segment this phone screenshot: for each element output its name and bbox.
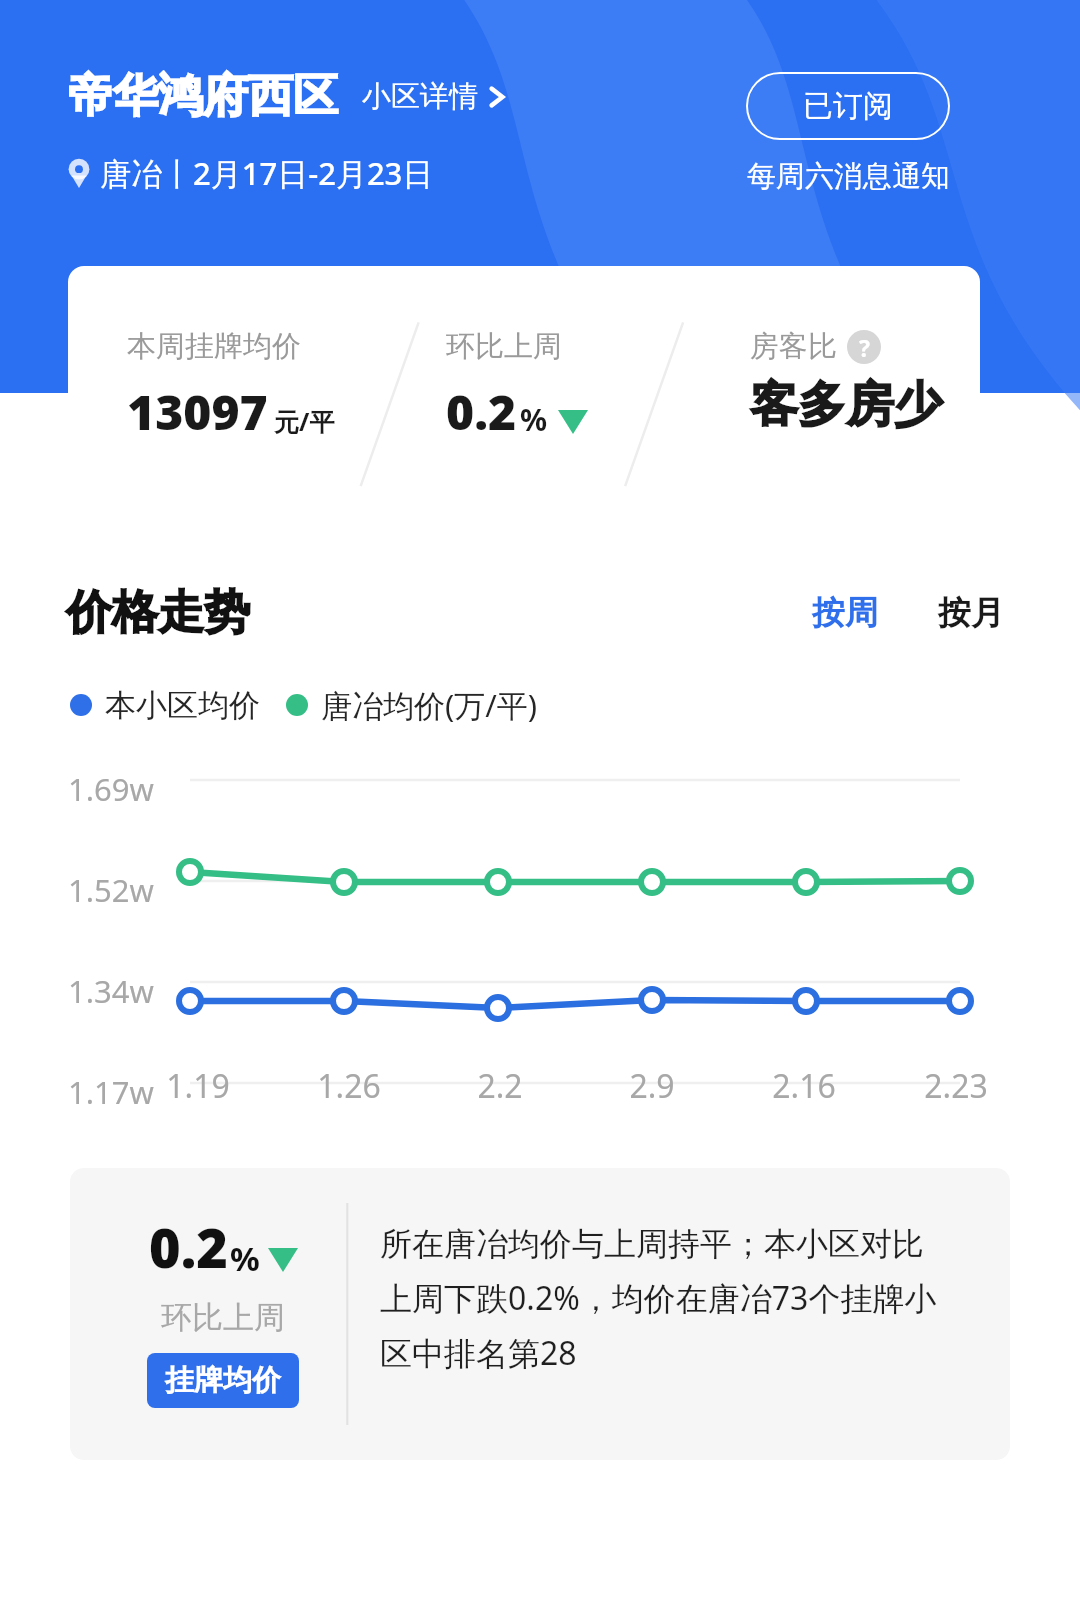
staticText: 已订阅 <box>803 87 893 125</box>
staticText: 唐冶丨2月17日-2月23日 <box>100 152 434 194</box>
staticText: 小区详情 <box>362 78 478 115</box>
staticText: 本周挂牌均价 <box>127 328 301 365</box>
staticText: % <box>520 399 548 440</box>
button[interactable]: 按月 <box>928 584 1014 642</box>
staticText: 价格走势 <box>66 584 250 642</box>
staticText: 2.2 <box>477 1064 523 1108</box>
staticText: 客多房少 <box>750 375 942 435</box>
staticText: 环比上周 <box>161 1298 285 1337</box>
staticText: 1.34w <box>68 970 154 1012</box>
staticText: ? <box>859 332 870 363</box>
button[interactable]: 已订阅 <box>746 72 950 140</box>
staticText: 2.23 <box>924 1064 988 1108</box>
staticText: 房客比 <box>750 328 837 365</box>
button[interactable]: 房客比说明 <box>847 330 881 364</box>
staticText: 帝华鸿府西区 <box>68 68 338 125</box>
staticText: 所在唐冶均价与上周持平；本小区对比上周下跌0.2%，均价在唐冶73个挂牌小区中排… <box>380 1224 940 1374</box>
staticText: 环比上周 <box>446 328 562 365</box>
staticText: 唐冶均价(万/平) <box>321 684 538 726</box>
button[interactable]: 小区详情 <box>360 72 510 121</box>
staticText: 1.69w <box>68 768 154 810</box>
staticText: 1.19 <box>166 1064 230 1108</box>
staticText: 2.9 <box>629 1064 675 1108</box>
button[interactable]: 本周挂牌均价 <box>68 266 980 522</box>
button[interactable]: 按周 <box>802 584 888 642</box>
staticText: 按月 <box>938 592 1004 634</box>
staticText: 13097 <box>127 379 268 444</box>
staticText: 本小区均价 <box>105 686 260 725</box>
button[interactable]: 0.2 <box>70 1168 1010 1460</box>
staticText: 0.2 <box>446 379 517 444</box>
staticText: 按周 <box>812 592 878 634</box>
staticText: 1.26 <box>317 1064 381 1108</box>
staticText: 2.16 <box>772 1064 836 1108</box>
staticText: 0.2 <box>149 1210 228 1284</box>
staticText: 挂牌均价 <box>165 1362 281 1399</box>
staticText: 每周六消息通知 <box>747 158 950 195</box>
staticText: % <box>230 1236 260 1281</box>
button[interactable]: 挂牌均价 <box>147 1353 299 1408</box>
staticText: 元/平 <box>274 404 335 438</box>
staticText: 1.17w <box>68 1071 154 1113</box>
staticText: 1.52w <box>68 869 154 911</box>
